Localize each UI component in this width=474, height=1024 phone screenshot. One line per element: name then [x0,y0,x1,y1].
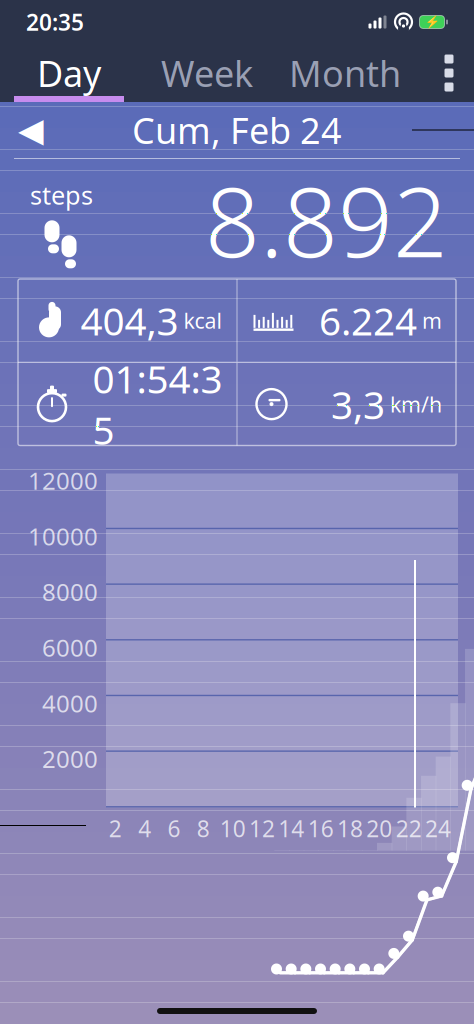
staticText: 8 [197,813,210,844]
staticText: 4 [138,813,151,844]
staticText: m [422,306,442,334]
staticText: 2 [109,813,122,844]
staticText: 12000 [28,464,98,496]
staticText: 404,3 [80,295,178,346]
staticText: Cum, Feb 24 [132,106,342,154]
staticText: 4000 [42,687,98,719]
staticText: 3,3 [331,378,385,430]
staticText: 22 [396,813,422,844]
staticText: 12 [249,813,275,844]
button[interactable]: Month [276,44,414,102]
staticText: 10000 [28,520,98,552]
staticText: 6.224 [319,295,417,346]
staticText: 8.892 [205,156,448,284]
staticText: 20:35 [26,7,84,37]
staticText: ◀ [18,111,44,149]
staticText: kcal [183,306,222,334]
staticText: 6 [167,813,180,844]
staticText: 20 [366,813,392,844]
staticText: Week [161,49,253,97]
staticText: Month [289,49,401,97]
button[interactable]: Previous day [0,102,62,158]
button[interactable]: More options [424,44,474,102]
staticText: 24 [425,813,451,844]
staticText: steps [30,178,93,212]
button[interactable]: Week [138,44,276,102]
staticText: 6000 [42,631,98,663]
staticText: ⚡ [424,15,439,29]
staticText: km/h [390,390,442,418]
button[interactable]: Day [0,44,138,102]
staticText: 8000 [42,576,98,608]
staticText: 18 [337,813,363,844]
staticText: 14 [278,813,304,844]
staticText: Day [37,49,101,97]
staticText: 16 [308,813,334,844]
staticText: 10 [220,813,246,844]
staticText: 01:54:35 [92,353,222,455]
staticText: 2000 [42,743,98,775]
